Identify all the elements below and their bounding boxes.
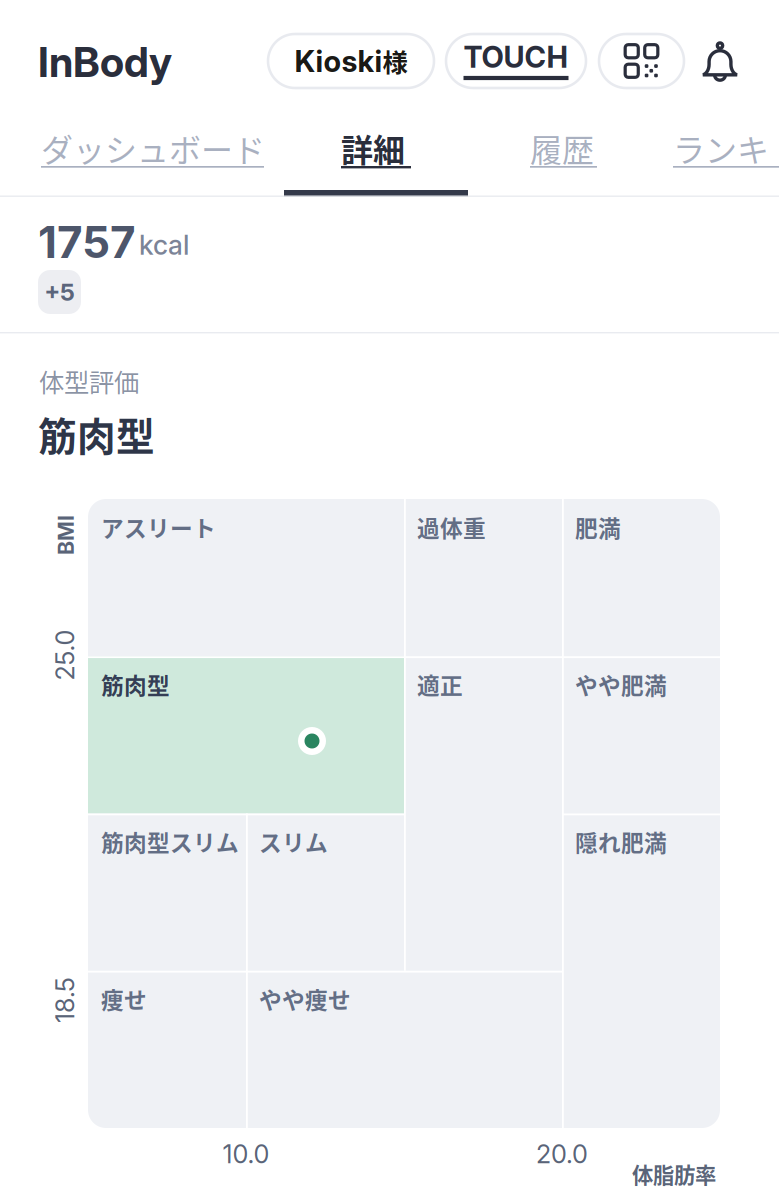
button[interactable]: ランキ (673, 110, 779, 196)
staticText: やや痩せ (259, 982, 351, 1015)
staticText: 履歴 (530, 125, 594, 171)
staticText: やや肥満 (575, 668, 667, 701)
staticText: ダッシュボード (41, 125, 265, 171)
staticText: 1757 (38, 215, 136, 269)
staticText: 25.0 (39, 640, 90, 670)
staticText: 20.0 (536, 1139, 588, 1169)
staticText: 過体重 (417, 511, 486, 543)
button[interactable]: 履歴 (530, 110, 601, 196)
staticText: アスリート (101, 511, 216, 543)
staticText: 筋肉型 (101, 668, 170, 701)
staticText: Kioski様 (294, 43, 407, 79)
staticText: ランキ (673, 125, 769, 171)
staticText: InBody (38, 37, 172, 87)
staticText: BMI (46, 522, 86, 548)
button[interactable]: QRコード (599, 34, 684, 88)
button[interactable]: ダッシュボード (41, 110, 268, 196)
staticText: +5 (44, 277, 75, 306)
staticText: 隠れ肥満 (575, 825, 667, 858)
staticText: 筋肉型スリム (101, 825, 239, 858)
button[interactable]: Kioski様 (268, 34, 434, 88)
staticText: 体型評価 (39, 363, 139, 399)
staticText: 体脂肪率 (632, 1159, 716, 1189)
staticText: 詳細 (341, 125, 405, 171)
staticText: 10.0 (222, 1139, 269, 1169)
staticText: TOUCH (463, 39, 568, 75)
staticText: 適正 (417, 668, 463, 701)
button[interactable]: 詳細 (341, 110, 415, 196)
staticText: 筋肉型 (38, 406, 155, 462)
button[interactable]: TOUCH (446, 34, 586, 88)
staticText: kcal (139, 229, 189, 261)
staticText: 18.5 (42, 985, 88, 1015)
staticText: 肥満 (575, 511, 621, 543)
staticText: スリム (259, 825, 328, 858)
button[interactable]: 通知 (692, 34, 748, 88)
staticText: 痩せ (101, 982, 147, 1015)
